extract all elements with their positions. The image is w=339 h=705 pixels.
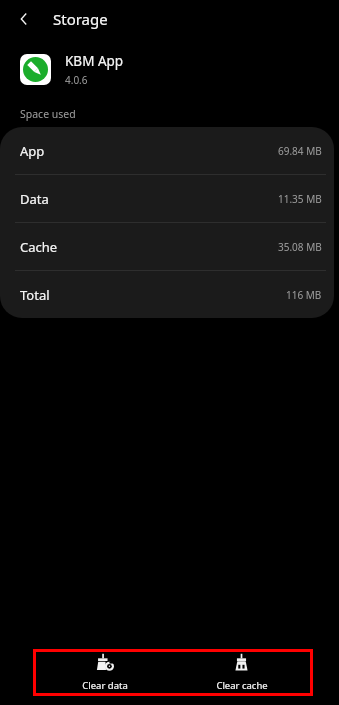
- button[interactable]: Cache: [0, 223, 334, 270]
- staticText: 116 MB: [286, 288, 322, 302]
- button[interactable]: KBM App: [0, 37, 339, 101]
- button[interactable]: App: [0, 127, 334, 174]
- staticText: App: [20, 142, 45, 160]
- button[interactable]: Clear cache: [173, 652, 310, 693]
- staticText: 11.35 MB: [278, 192, 322, 206]
- staticText: Space used: [20, 107, 76, 121]
- button[interactable]: Total: [0, 271, 334, 318]
- staticText: Data: [20, 190, 49, 208]
- staticText: 35.08 MB: [278, 240, 322, 254]
- staticText: KBM App: [65, 52, 124, 70]
- staticText: Storage: [53, 9, 108, 29]
- staticText: 69.84 MB: [278, 144, 322, 158]
- staticText: Clear data: [82, 679, 128, 692]
- button[interactable]: Clear data: [36, 652, 173, 693]
- button[interactable]: Back: [9, 4, 39, 34]
- button[interactable]: Data: [0, 175, 334, 222]
- staticText: Cache: [20, 238, 58, 256]
- staticText: Total: [20, 286, 50, 304]
- staticText: Clear cache: [216, 679, 268, 692]
- staticText: 4.0.6: [65, 73, 88, 87]
